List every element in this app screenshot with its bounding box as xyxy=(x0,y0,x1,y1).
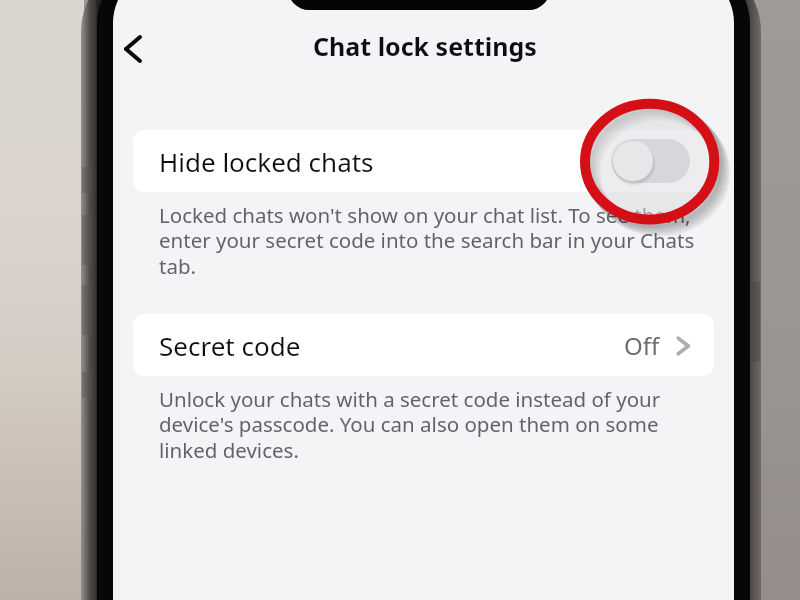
staticText: Unlock your chats with a secret code ins… xyxy=(159,385,711,464)
staticText: Chat lock settings xyxy=(313,29,537,63)
staticText: Off xyxy=(624,329,660,362)
button[interactable]: Secret code xyxy=(133,314,714,376)
button[interactable]: Hide locked chats toggle, off xyxy=(611,139,690,183)
button[interactable]: Hide locked chats xyxy=(133,130,714,192)
button[interactable]: Back xyxy=(113,23,165,75)
staticText: Locked chats won't show on your chat lis… xyxy=(159,201,711,280)
staticText: Hide locked chats xyxy=(159,144,374,179)
staticText: Secret code xyxy=(159,328,301,363)
